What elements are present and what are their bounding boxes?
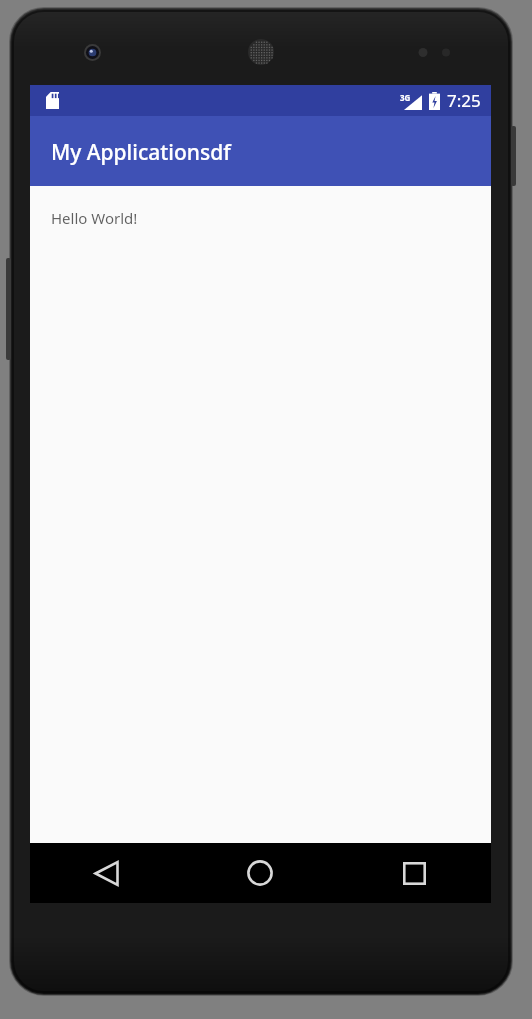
button[interactable]: Recent apps xyxy=(337,843,491,903)
other: Volume xyxy=(6,258,11,360)
staticText: 3G xyxy=(400,92,411,103)
button[interactable]: Back xyxy=(30,843,183,903)
other: Power xyxy=(511,126,516,186)
button[interactable]: My Applicationsdf xyxy=(30,116,491,186)
staticText: My Applicationsdf xyxy=(51,138,231,167)
button[interactable]: Home xyxy=(183,843,337,903)
staticText: Hello World! xyxy=(51,208,138,228)
staticText: 7:25 xyxy=(447,89,481,112)
